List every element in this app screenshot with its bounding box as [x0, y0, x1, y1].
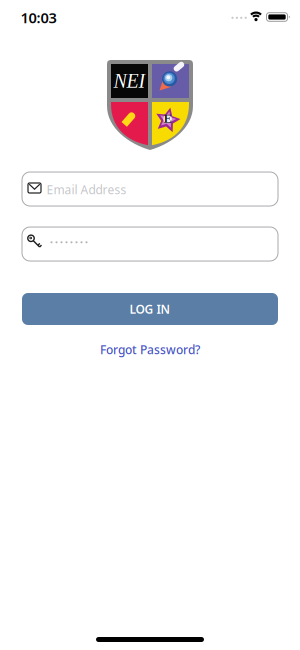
button[interactable] — [22, 227, 278, 261]
button[interactable]: Email Address — [22, 172, 278, 206]
staticText: Email Address — [46, 181, 126, 197]
button[interactable]: LOG IN — [22, 293, 278, 325]
staticText: 10:03 — [20, 8, 56, 27]
staticText: LOG IN — [129, 301, 170, 317]
staticText: E — [164, 112, 172, 125]
button[interactable]: Forgot Password? — [100, 341, 200, 357]
staticText: Forgot Password? — [100, 341, 200, 357]
staticText: NEI — [113, 70, 145, 92]
